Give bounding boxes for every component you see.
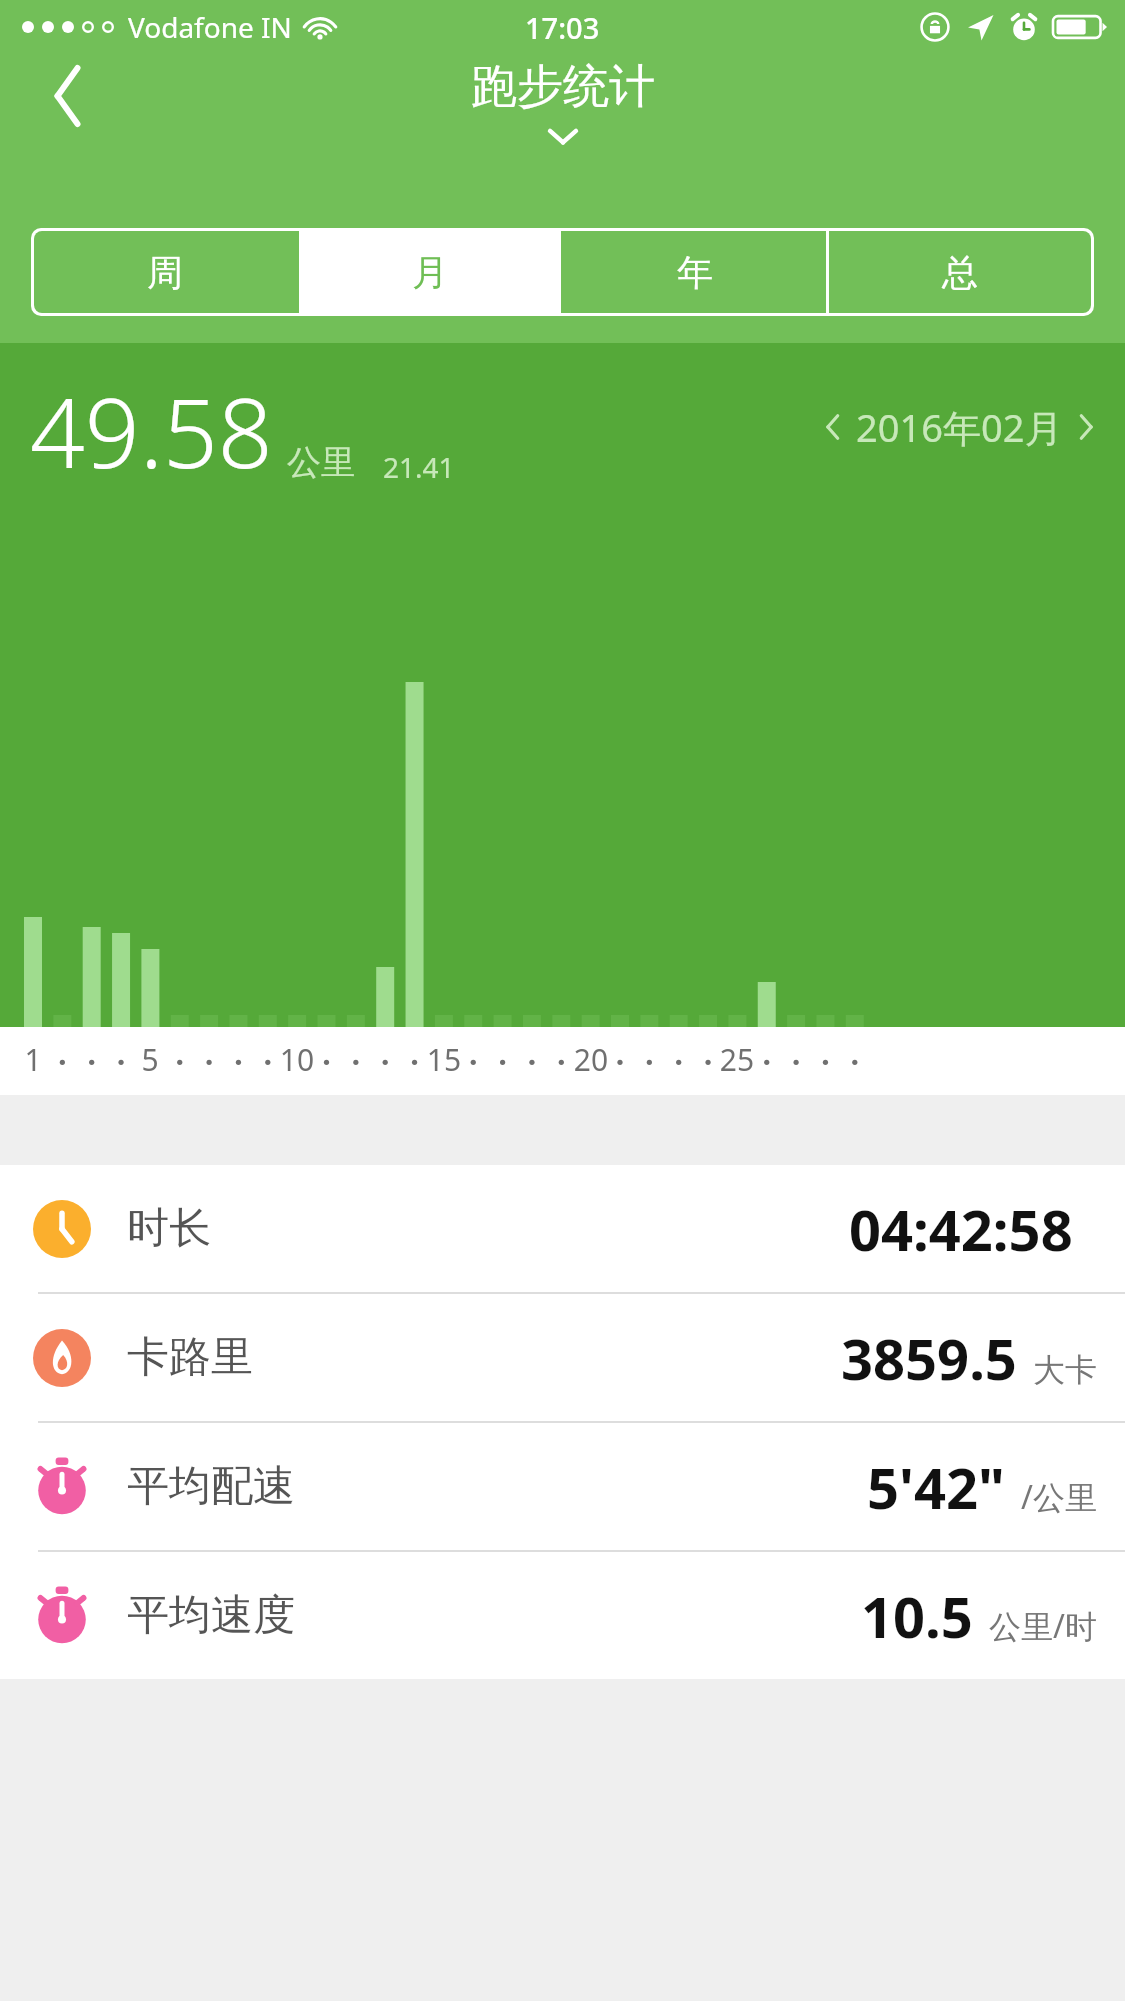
staticText: 跑步统计 [471, 58, 655, 116]
staticText: /公里 [1021, 1475, 1097, 1519]
staticText: 49.58 [30, 365, 273, 496]
staticText: 平均速度 [127, 1589, 295, 1642]
staticText: Vodafone IN [128, 8, 292, 46]
staticText: 时长 [127, 1202, 211, 1255]
staticText: 5'42" [867, 1449, 1005, 1525]
staticText: 公里 [287, 441, 355, 484]
button[interactable]: 2016年02月 [820, 401, 1099, 453]
staticText: 年 [677, 250, 713, 295]
staticText: 3859.5 [841, 1320, 1017, 1396]
button[interactable]: Expand [536, 120, 590, 154]
button[interactable]: 平均配速 [0, 1423, 1125, 1550]
staticText: 平均配速 [127, 1460, 295, 1513]
staticText: 21.41 [383, 448, 455, 486]
staticText: 10.5 [861, 1578, 973, 1654]
button[interactable]: 月 [299, 231, 561, 313]
staticText: 2016年02月 [856, 401, 1063, 453]
staticText: 大卡 [1033, 1350, 1097, 1390]
button[interactable]: Back [30, 58, 106, 134]
staticText: 公里/时 [989, 1604, 1097, 1648]
staticText: 25 [697, 1039, 777, 1080]
staticText: 卡路里 [127, 1331, 253, 1384]
staticText: 04:42:58 [849, 1191, 1073, 1267]
staticText: 1 [0, 1039, 73, 1080]
staticText: 总 [942, 250, 978, 295]
button[interactable]: 平均速度 [0, 1552, 1125, 1679]
staticText: 月 [412, 250, 448, 295]
button[interactable]: 卡路里 [0, 1294, 1125, 1421]
staticText: 20 [551, 1039, 631, 1080]
staticText: 周 [147, 250, 183, 295]
button[interactable]: 年 [564, 231, 826, 313]
staticText: 15 [404, 1039, 484, 1080]
button[interactable]: 周 [34, 231, 296, 313]
staticText: 17:03 [525, 8, 600, 47]
button[interactable]: 时长 [0, 1165, 1125, 1292]
staticText: 10 [257, 1039, 337, 1080]
button[interactable]: 总 [829, 231, 1091, 313]
staticText: 5 [110, 1039, 190, 1080]
